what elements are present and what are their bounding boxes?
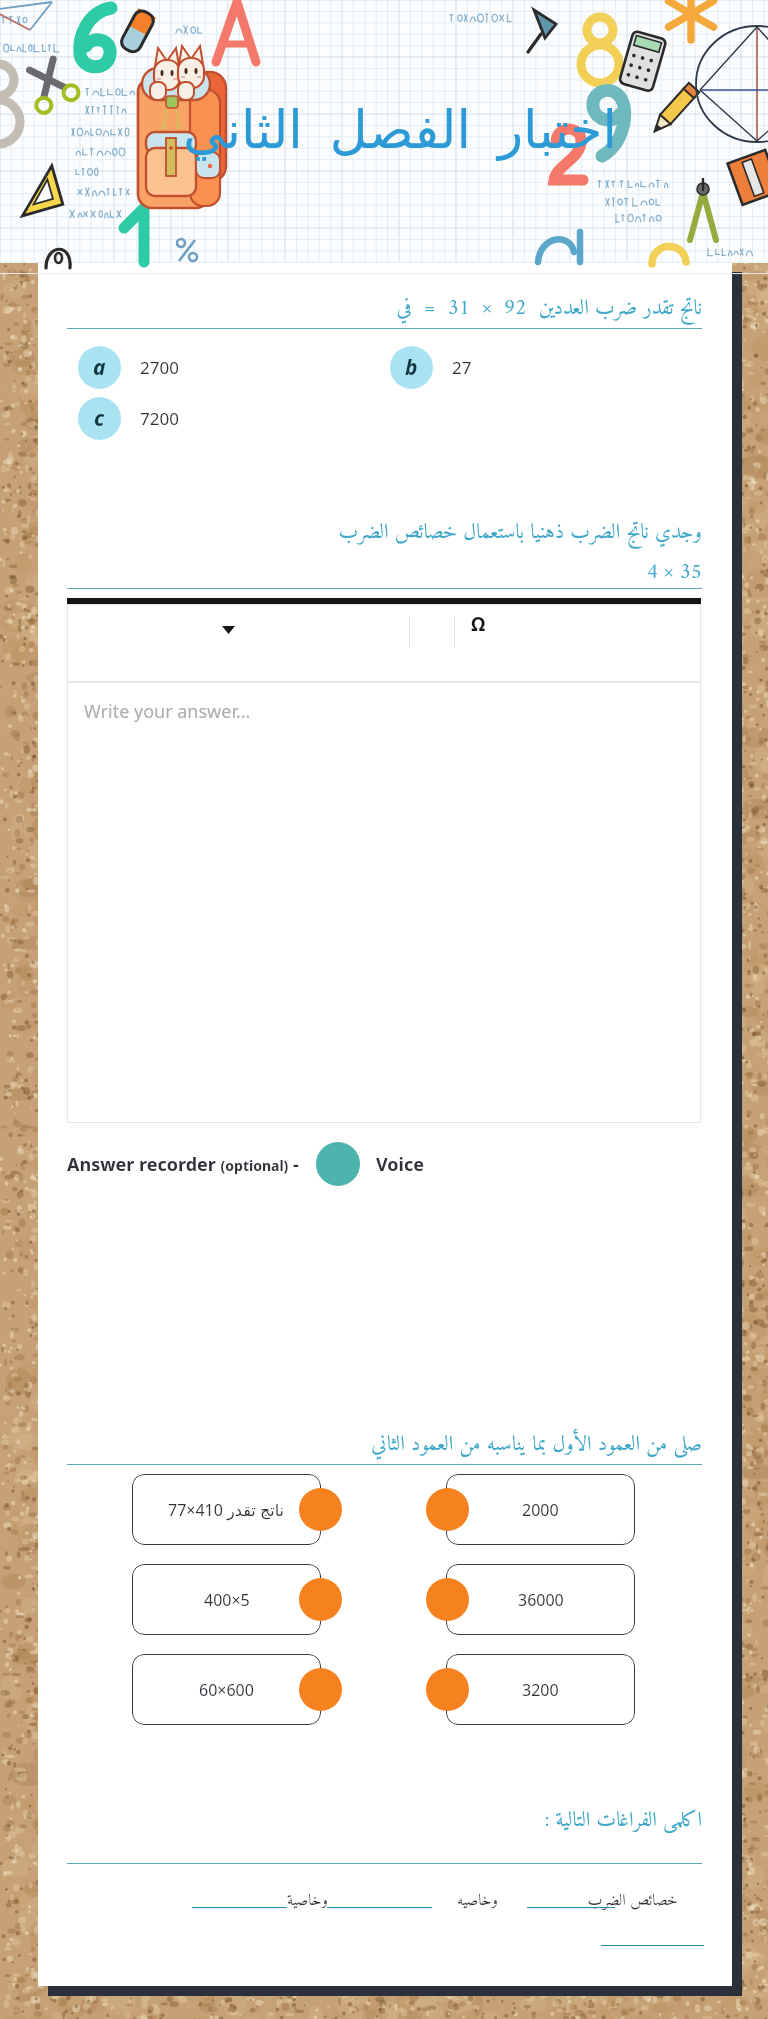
staticText: 36000	[518, 1589, 564, 1611]
staticText: 7200	[140, 407, 179, 430]
staticText: وجدي ناتج الضرب ذهنيا باستعمال خصائص الض…	[67, 514, 702, 551]
button[interactable]: Connect right item	[426, 1668, 469, 1711]
button[interactable]: 2000	[446, 1474, 635, 1545]
staticText: 400×5	[204, 1589, 250, 1611]
button[interactable]: Write your answer...	[67, 682, 701, 1123]
staticText: ناتج تقدر 410×77	[168, 1499, 285, 1521]
staticText: 35 × 4	[67, 554, 702, 591]
staticText: a	[93, 353, 106, 382]
staticText: 60×600	[199, 1679, 254, 1701]
staticText: وخاصية	[208, 1887, 328, 1915]
staticText: Answer recorder (optional) -	[67, 1152, 299, 1177]
staticText: ناتج تقدر ضرب العددين 92 × 31 = في	[67, 290, 702, 327]
staticText: Ω	[471, 611, 486, 637]
staticText: 2000	[522, 1499, 559, 1521]
button[interactable]: Connect right item	[426, 1488, 469, 1531]
button[interactable]: Connect left item	[299, 1668, 342, 1711]
button[interactable]: b	[390, 346, 472, 389]
button[interactable]: 60×600	[132, 1654, 321, 1725]
button[interactable]: Connect right item	[426, 1578, 469, 1621]
button[interactable]: 3200	[446, 1654, 635, 1725]
button[interactable]: Record voice answer	[316, 1142, 360, 1186]
button[interactable]: 36000	[446, 1564, 635, 1635]
staticText: Voice	[376, 1152, 425, 1177]
button[interactable]: Connect left item	[299, 1578, 342, 1621]
staticText: 27	[452, 356, 472, 379]
button[interactable]: a	[78, 346, 179, 389]
button[interactable]: Connect left item	[299, 1488, 342, 1531]
staticText: b	[405, 353, 418, 382]
staticText: 2700	[140, 356, 179, 379]
staticText: وخاصيه	[378, 1887, 498, 1915]
button[interactable]: c	[78, 397, 179, 440]
staticText: اختبار الفصل الثاني	[170, 92, 630, 163]
button[interactable]: ناتج تقدر 410×77	[132, 1474, 321, 1545]
button[interactable]: 400×5	[132, 1564, 321, 1635]
staticText: 3200	[522, 1679, 559, 1701]
staticText: Write your answer...	[84, 699, 251, 724]
staticText: c	[94, 404, 105, 433]
staticText: اكلمى الفراغات التالية :	[67, 1802, 702, 1839]
staticText: صلى من العمود الأول بما يناسبه من العمود…	[67, 1426, 702, 1463]
staticText: خصائص الضرب	[558, 1887, 678, 1915]
